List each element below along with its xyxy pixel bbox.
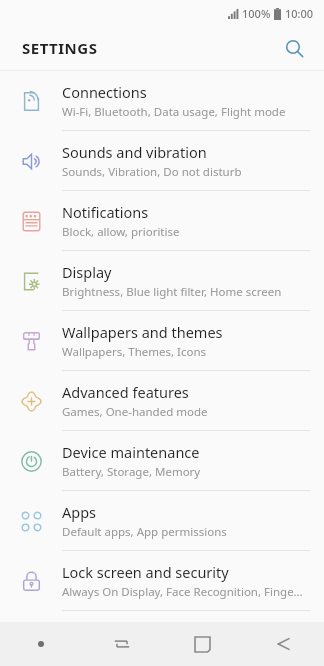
button[interactable]: Lock screen and security (0, 551, 324, 610)
button[interactable]: Device maintenance (0, 431, 324, 490)
staticText: Wi-Fi, Bluetooth, Data usage, Flight mod… (62, 104, 286, 120)
staticText: Battery, Storage, Memory (62, 464, 201, 480)
staticText: Notifications (62, 202, 149, 222)
staticText: Connections (62, 82, 147, 102)
button[interactable]: Back (243, 622, 324, 666)
staticText: 100% (242, 6, 271, 21)
staticText: Advanced features (62, 382, 189, 402)
staticText: Block, allow, prioritise (62, 224, 180, 240)
button[interactable]: Sounds and vibration (0, 131, 324, 190)
staticText: Apps (62, 502, 97, 522)
button[interactable]: Wallpapers and themes (0, 311, 324, 370)
staticText: Games, One-handed mode (62, 404, 208, 420)
staticText: Default apps, App permissions (62, 524, 227, 540)
staticText: Wallpapers and themes (62, 322, 223, 342)
staticText: Brightness, Blue light filter, Home scre… (62, 284, 282, 300)
button[interactable]: Notifications (0, 191, 324, 250)
staticText: Lock screen and security (62, 562, 229, 582)
button[interactable]: Recents (81, 622, 162, 666)
staticText: Sounds, Vibration, Do not disturb (62, 164, 242, 180)
button[interactable]: Search (276, 30, 312, 66)
staticText: Display (62, 262, 112, 282)
button[interactable]: Advanced features (0, 371, 324, 430)
staticText: SETTINGS (22, 38, 98, 58)
staticText: Sounds and vibration (62, 142, 207, 162)
button[interactable]: Display (0, 251, 324, 310)
button[interactable]: Connections (0, 71, 324, 130)
button[interactable]: Assistant (0, 622, 81, 666)
staticText: 10:00 (285, 6, 314, 21)
staticText: Always On Display, Face Recognition, Fin… (62, 584, 303, 600)
staticText: Device maintenance (62, 442, 200, 462)
staticText: Wallpapers, Themes, Icons (62, 344, 207, 360)
button[interactable]: Home (162, 622, 243, 666)
button[interactable]: Apps (0, 491, 324, 550)
